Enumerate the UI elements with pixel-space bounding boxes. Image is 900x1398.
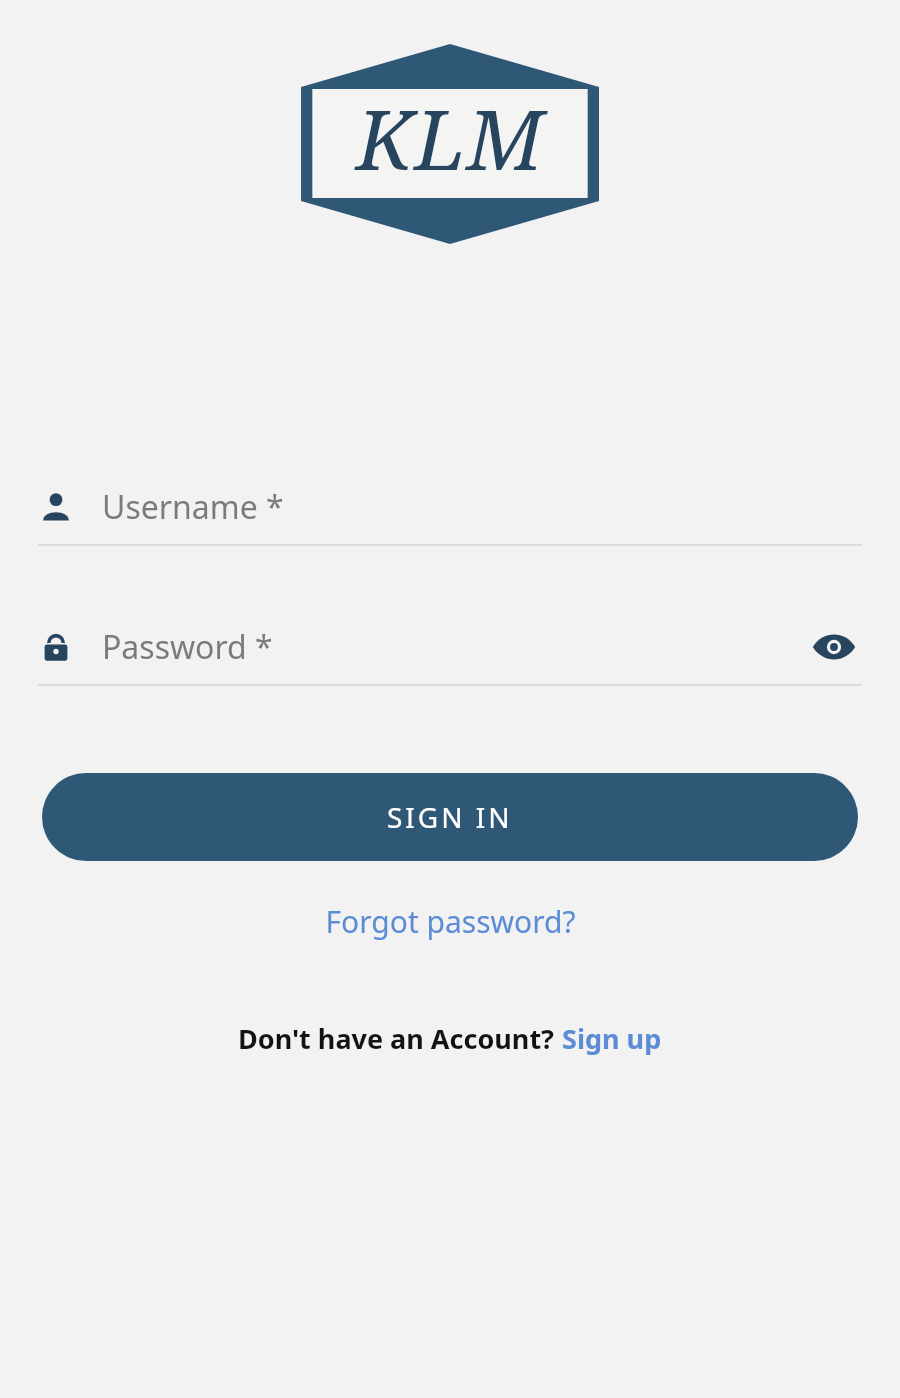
button[interactable]: Username * bbox=[38, 470, 862, 546]
button[interactable]: Forgot password? bbox=[309, 893, 592, 950]
staticText: KLM bbox=[356, 82, 545, 194]
staticText: Don't have an Account? bbox=[238, 1020, 562, 1057]
staticText: Forgot password? bbox=[325, 901, 576, 942]
button[interactable]: Sign up bbox=[562, 1020, 662, 1057]
button[interactable]: SIGN IN bbox=[42, 773, 858, 861]
staticText: Password * bbox=[102, 625, 273, 669]
staticText: Username * bbox=[102, 485, 284, 529]
staticText: SIGN IN bbox=[387, 798, 513, 836]
staticText: Sign up bbox=[562, 1020, 662, 1057]
button[interactable]: Show password bbox=[806, 619, 862, 675]
button[interactable]: Password * bbox=[38, 610, 862, 686]
